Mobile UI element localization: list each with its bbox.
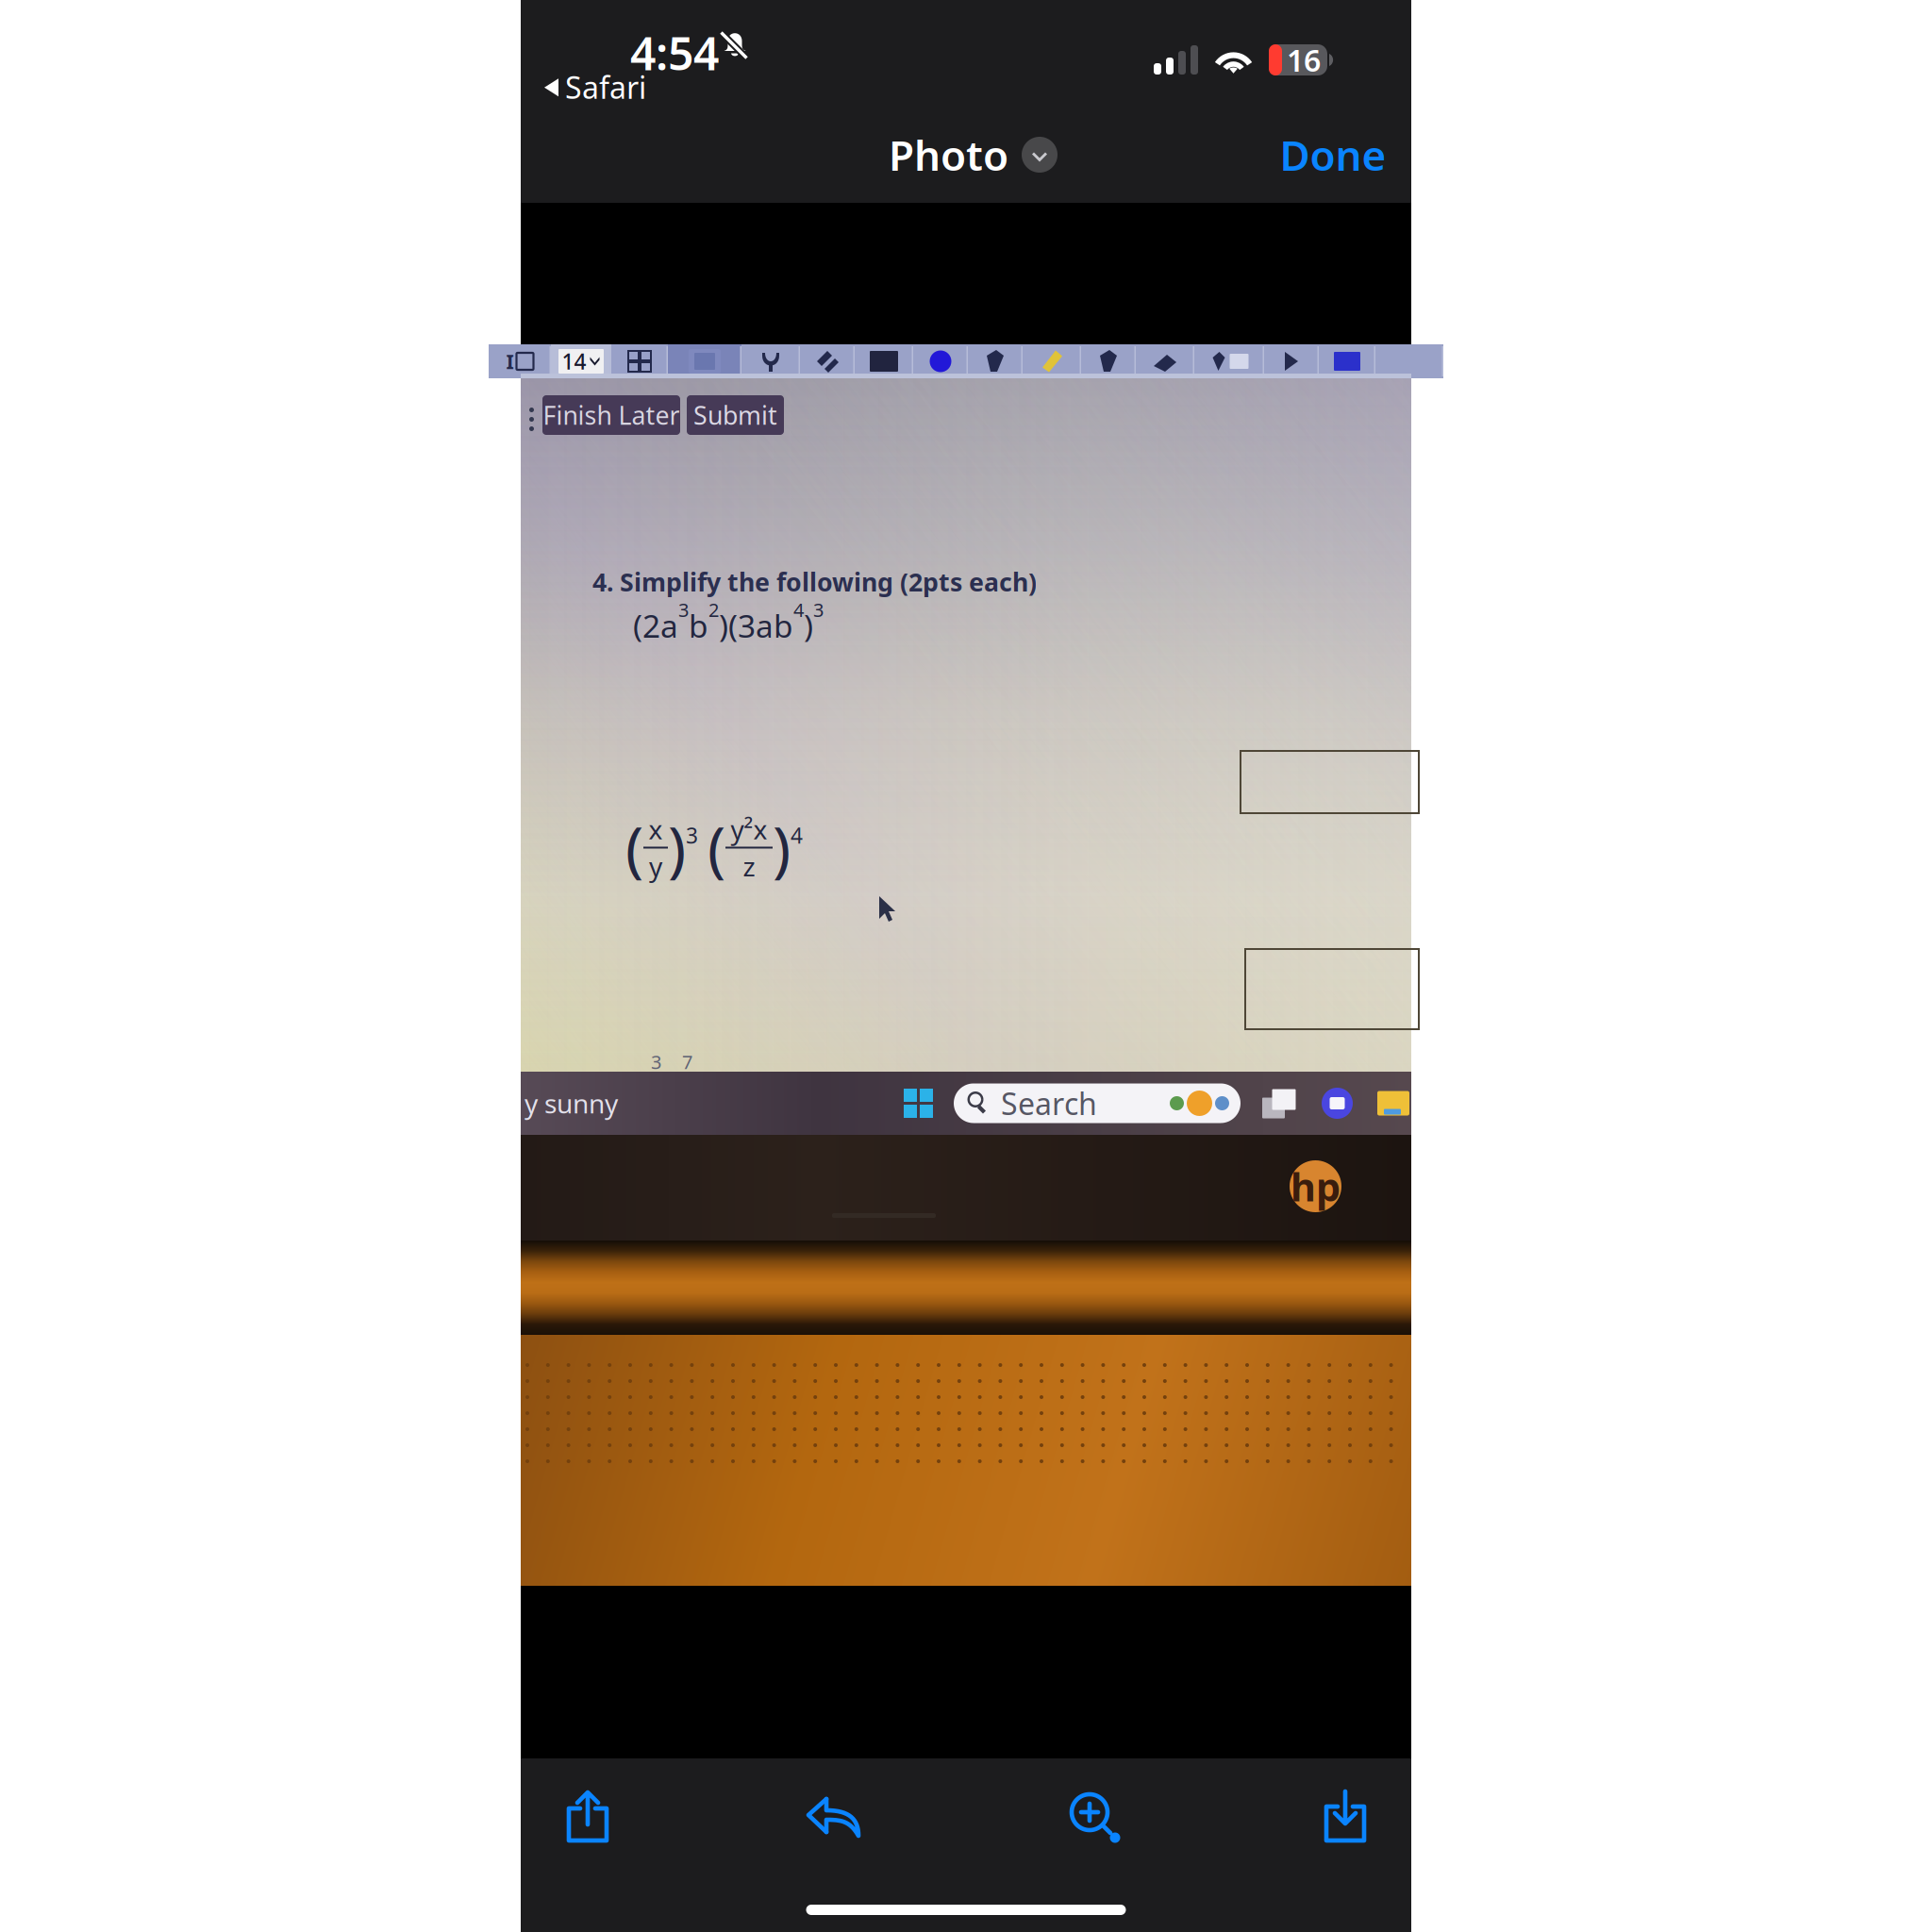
- staticText: 4: [791, 821, 803, 850]
- staticText: I: [506, 348, 514, 375]
- button[interactable]: Share: [542, 1774, 633, 1860]
- staticText: Safari: [565, 67, 646, 107]
- staticText: y sunny: [525, 1086, 618, 1121]
- staticText: x: [649, 812, 663, 847]
- staticText: Submit: [693, 398, 777, 432]
- staticText: ): [804, 605, 813, 646]
- button[interactable]: Markup: [789, 1774, 879, 1860]
- staticText: Photo: [889, 127, 1008, 182]
- staticText: 3: [678, 597, 689, 622]
- staticText: y: [649, 849, 662, 884]
- staticText: 3: [686, 821, 698, 850]
- staticText: 14: [562, 347, 586, 375]
- staticText: 4:54: [630, 23, 719, 83]
- staticText: ): [773, 808, 791, 888]
- staticText: (: [625, 808, 643, 888]
- staticText: Done: [1280, 127, 1386, 182]
- staticText: 4. Simplify the following (2pts each): [592, 565, 1037, 598]
- staticText: (: [708, 808, 725, 888]
- button[interactable]: Done: [1283, 134, 1383, 175]
- button[interactable]: Finish Later: [542, 395, 680, 435]
- staticText: Search: [1001, 1083, 1097, 1123]
- staticText: Finish Later: [543, 398, 680, 432]
- button[interactable]: Save to Photos: [1300, 1774, 1391, 1860]
- button[interactable]: Submit: [687, 395, 784, 435]
- staticText: 3: [813, 597, 824, 622]
- staticText: 16: [1287, 40, 1321, 80]
- button[interactable]: Photo: [889, 134, 1058, 175]
- staticText: z: [743, 849, 755, 884]
- staticText: 4: [793, 597, 804, 622]
- staticText: 2: [708, 597, 719, 622]
- staticText: 7: [682, 1049, 692, 1074]
- staticText: (2a: [633, 605, 678, 646]
- staticText: hp: [1291, 1160, 1341, 1212]
- staticText: 3: [651, 1049, 661, 1074]
- staticText: ): [668, 808, 686, 888]
- staticText: y²x: [731, 812, 767, 847]
- staticText: b: [689, 605, 708, 646]
- staticText: )(3ab: [719, 605, 793, 646]
- button[interactable]: Zoom in: [1049, 1774, 1140, 1860]
- button[interactable]: Safari: [544, 62, 646, 112]
